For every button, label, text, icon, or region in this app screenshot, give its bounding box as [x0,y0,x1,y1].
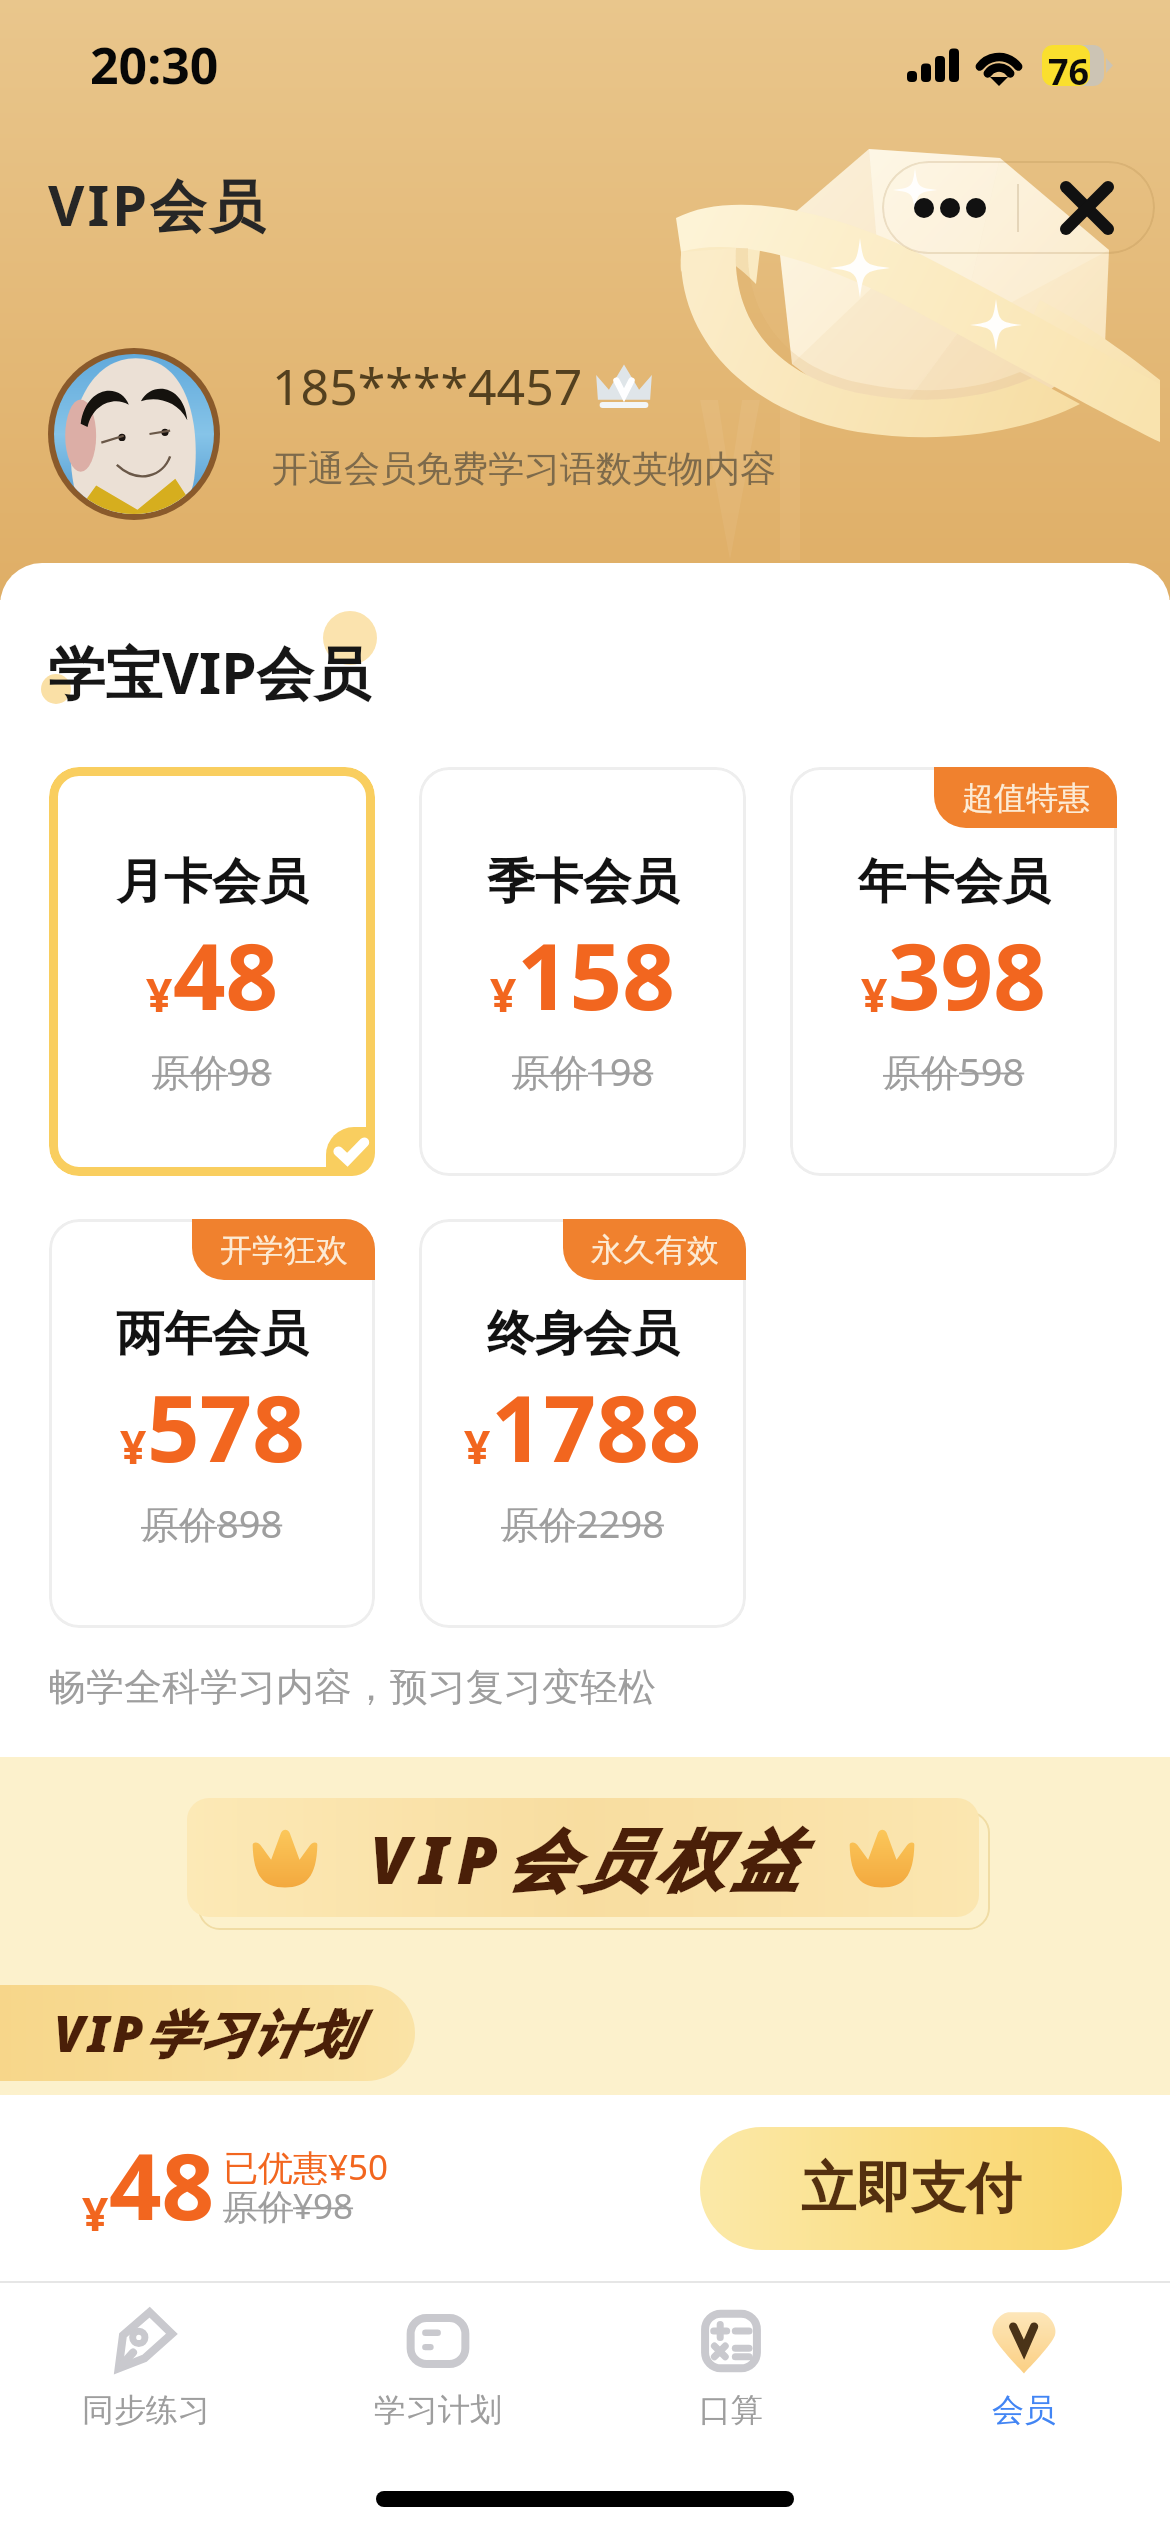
staticText: 578 [147,1364,305,1489]
staticText: 原价198 [512,1045,654,1097]
staticText: 会员 [992,2390,1056,2430]
staticText: VIP会员权益 [370,1813,807,1903]
staticText: 超值特惠 [962,778,1090,818]
staticText: 398 [888,912,1046,1037]
button[interactable]: 年卡会员 [790,767,1117,1176]
staticText: 已优惠¥50 [223,2143,389,2191]
button[interactable]: More options [882,161,1017,254]
staticText: 158 [517,912,675,1037]
staticText: VIP会员 [48,166,268,242]
button[interactable]: Close [1019,161,1155,254]
button[interactable]: 两年会员 [49,1219,375,1628]
staticText: 学宝VIP会员 [48,633,371,711]
staticText: 畅学全科学习内容，预习复习变轻松 [48,1663,656,1711]
staticText: 季卡会员 [487,852,679,912]
staticText: 月卡会员 [116,852,308,912]
staticText: 原价¥98 [223,2182,354,2230]
staticText: 学习计划 [374,2390,502,2430]
staticText: 原价98 [152,1045,272,1097]
button[interactable]: 季卡会员 [419,767,746,1176]
staticText: 48 [173,912,279,1037]
staticText: 原价898 [141,1497,283,1549]
staticText: 两年会员 [116,1304,308,1364]
staticText: 开学狂欢 [220,1230,348,1270]
staticText: 185****4457 [272,352,583,420]
staticText: 原价598 [883,1045,1025,1097]
staticText: 同步练习 [82,2390,210,2430]
staticText: 永久有效 [591,1230,719,1270]
staticText: ¥ [464,1415,491,1478]
button[interactable]: 终身会员 [419,1219,746,1628]
staticText: ¥ [490,963,517,1026]
staticText: ¥ [120,1415,147,1478]
staticText: ¥ [82,2182,109,2245]
button[interactable]: 会员 [877,2283,1170,2451]
staticText: 20:30 [90,31,219,99]
staticText: 立即支付 [801,2154,1021,2223]
button[interactable]: VIP会员权益 [187,1798,979,1917]
button[interactable]: 口算 [584,2283,877,2451]
staticText: ¥ [146,963,173,1026]
staticText: 48 [109,2122,215,2247]
staticText: 开通会员免费学习语数英物内容 [272,446,776,491]
button[interactable]: 同步练习 [0,2283,292,2451]
button[interactable]: 学习计划 [292,2283,584,2451]
button[interactable]: 月卡会员 [49,767,375,1176]
staticText: VIP学习计划 [54,1999,359,2067]
staticText: 1788 [491,1364,702,1489]
staticText: 口算 [699,2390,763,2430]
staticText: ¥ [861,963,888,1026]
staticText: 76 [1048,47,1090,88]
staticText: 原价2298 [501,1497,664,1549]
staticText: 终身会员 [487,1304,679,1364]
staticText: 年卡会员 [858,852,1050,912]
button[interactable]: 立即支付 [700,2127,1122,2250]
button[interactable]: VIP学习计划 [0,1985,415,2081]
